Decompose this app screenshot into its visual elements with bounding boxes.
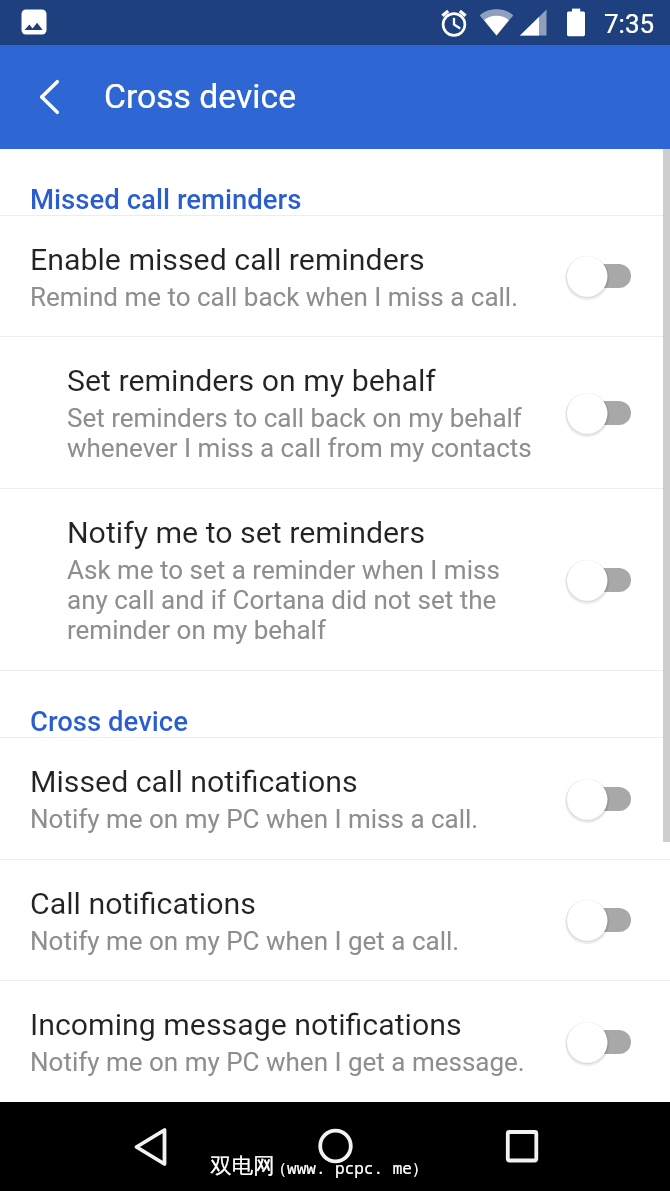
button[interactable]: Toggle Set reminders on my behalf bbox=[567, 380, 653, 446]
button[interactable]: Toggle Enable missed call reminders bbox=[567, 243, 653, 309]
staticText: Notify me on my PC when I get a message. bbox=[30, 1047, 525, 1077]
staticText: Call notifications bbox=[30, 886, 256, 922]
staticText: Missed call reminders bbox=[30, 183, 302, 215]
button[interactable]: Toggle Incoming message notifications bbox=[567, 1009, 653, 1075]
button[interactable]: Missed call notifications bbox=[0, 738, 670, 859]
button[interactable]: Incoming message notifications bbox=[0, 981, 670, 1102]
button[interactable]: Notify me to set reminders bbox=[0, 489, 670, 670]
staticText: Cross device bbox=[104, 77, 297, 116]
staticText: Incoming message notifications bbox=[30, 1007, 462, 1043]
staticText: Remind me to call back when I miss a cal… bbox=[30, 282, 519, 312]
staticText: Notify me to set reminders bbox=[67, 515, 426, 551]
button[interactable]: Back bbox=[22, 70, 76, 124]
button[interactable]: Toggle Notify me to set reminders bbox=[567, 547, 653, 613]
staticText: Notify me on my PC when I miss a call. bbox=[30, 804, 479, 834]
staticText: 双电网 bbox=[210, 1152, 275, 1179]
button[interactable]: Toggle Missed call notifications bbox=[567, 766, 653, 832]
button[interactable]: Call notifications bbox=[0, 860, 670, 980]
staticText: （www. pcpc. me） bbox=[271, 1157, 428, 1179]
staticText: Set reminders to call back on my behalf … bbox=[67, 403, 532, 463]
staticText: Notify me on my PC when I get a call. bbox=[30, 926, 460, 956]
staticText: Ask me to set a reminder when I miss any… bbox=[67, 555, 500, 645]
staticText: Cross device bbox=[30, 705, 188, 737]
staticText: 7:35 bbox=[604, 9, 655, 39]
button[interactable]: Recents bbox=[492, 1117, 550, 1175]
button[interactable]: Set reminders on my behalf bbox=[0, 337, 670, 488]
staticText: Missed call notifications bbox=[30, 764, 358, 800]
button[interactable]: Missed call reminders bbox=[0, 149, 670, 215]
staticText: Set reminders on my behalf bbox=[67, 363, 436, 399]
button[interactable]: Toggle Call notifications bbox=[567, 887, 653, 953]
button[interactable]: Back bbox=[121, 1118, 179, 1176]
button[interactable]: Enable missed call reminders bbox=[0, 216, 670, 336]
staticText: Enable missed call reminders bbox=[30, 242, 425, 278]
button[interactable]: Home bbox=[306, 1117, 364, 1175]
button[interactable]: Cross device bbox=[0, 671, 670, 737]
